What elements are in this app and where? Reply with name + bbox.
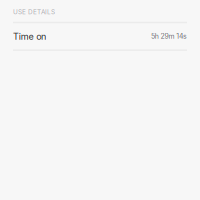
button[interactable]: Time on <box>0 23 200 49</box>
staticText: USE DETAILS <box>13 8 55 16</box>
staticText: Time on <box>13 31 46 42</box>
staticText: 5h 29m 14s <box>151 32 187 40</box>
